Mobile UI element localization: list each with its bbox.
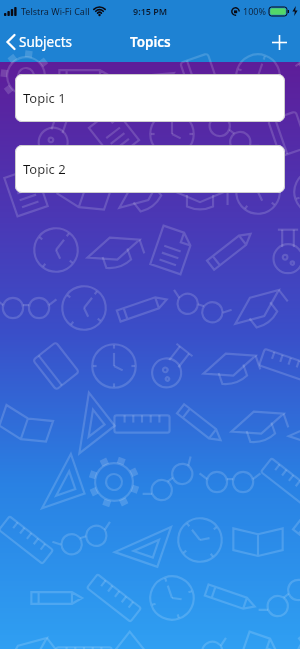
- button[interactable]: Topic 1: [15, 74, 285, 122]
- staticText: Topics: [130, 33, 171, 51]
- staticText: 100%: [243, 5, 266, 17]
- staticText: 9:15 PM: [133, 5, 168, 17]
- button[interactable]: Topic 2: [15, 145, 285, 193]
- staticText: Topic 1: [23, 89, 66, 107]
- staticText: Topic 2: [23, 160, 66, 178]
- button[interactable]: [266, 29, 292, 55]
- staticText: Telstra Wi-Fi Call: [21, 5, 90, 17]
- staticText: Subjects: [19, 33, 72, 51]
- button[interactable]: Subjects: [6, 33, 72, 51]
